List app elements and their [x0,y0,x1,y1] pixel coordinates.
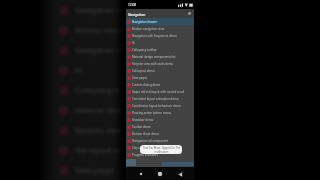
staticText: Navigation [128,12,146,16]
staticText: Navigation rail component [132,139,169,143]
staticText: Bottom navigation view [132,27,165,31]
button[interactable]: Tab layout demo [126,67,194,74]
button[interactable]: Home [155,169,165,179]
button[interactable]: View pager [126,74,194,81]
button[interactable]: Material design components list [126,53,194,60]
button[interactable]: Navigation rail component [126,137,194,144]
button[interactable]: Collapsing toolbar [126,46,194,53]
button[interactable]: Coordinator layout behaviour demo [126,102,194,109]
button[interactable]: More options [186,10,193,17]
button[interactable]: Snackbar demo [126,116,194,123]
staticText: Navigation drawer [132,20,158,24]
staticText: Recycler view with cards demo [132,62,174,66]
button[interactable]: Recycler view with cards demo [126,60,194,67]
staticText: Navigation with fragments demo [75,45,193,55]
staticText: Tab layout demo [132,69,155,73]
staticText: View pager [132,76,148,80]
staticText: Swipe refresh layout with nested scroll [132,90,185,94]
button[interactable]: Text You Want. Tapped On The notificatio… [140,145,182,154]
button[interactable]: Bottom sheet demo [126,130,194,137]
staticText: Tab layout demo [75,145,135,155]
staticText: Material design components list [132,55,176,59]
staticText: Recycler view with cards demo [75,125,184,135]
staticText: Text You Want. Tapped On The notificatio… [143,146,180,153]
staticText: Navigation with fragments demo [132,34,177,38]
button[interactable]: Toolbar demo [126,123,194,130]
button[interactable]: Bottom navigation view [126,25,194,32]
staticText: 12:08 [128,3,137,7]
staticText: Constraint layout animation demo [132,97,179,101]
staticText: View pager [75,165,115,175]
staticText: Floating action button menu [132,111,171,115]
staticText: Hi [132,41,135,45]
button[interactable]: Chips demo [126,144,194,151]
staticText: Progress indicators [132,153,159,157]
button[interactable]: Navigation drawer [126,18,194,25]
staticText: Bottom sheet demo [132,132,160,136]
button[interactable]: Floating action button menu [126,109,194,116]
staticText: Collapsing toolbar [132,48,157,52]
staticText: Coordinator layout behaviour demo [132,104,181,108]
staticText: Custom dialog demo [132,83,161,87]
button[interactable]: Progress indicators [126,151,194,158]
staticText: Toolbar demo [132,125,151,129]
staticText: Collapsing toolbar [75,85,141,95]
button[interactable]: Hi [126,39,194,46]
button[interactable]: Back [175,169,185,179]
button[interactable]: Constraint layout animation demo [126,95,194,102]
staticText: Chips demo [132,146,149,150]
button[interactable]: Swipe refresh layout with nested scroll [126,88,194,95]
button[interactable]: Recents [136,169,146,179]
button[interactable]: Custom dialog demo [126,81,194,88]
staticText: Bottom navigation view [75,25,160,35]
staticText: Navigation drawer [75,5,142,15]
staticText: Material design components list [75,105,190,115]
staticText: Snackbar demo [132,118,154,122]
button[interactable]: Navigation with fragments demo [126,32,194,39]
staticText: Hi [75,65,83,75]
